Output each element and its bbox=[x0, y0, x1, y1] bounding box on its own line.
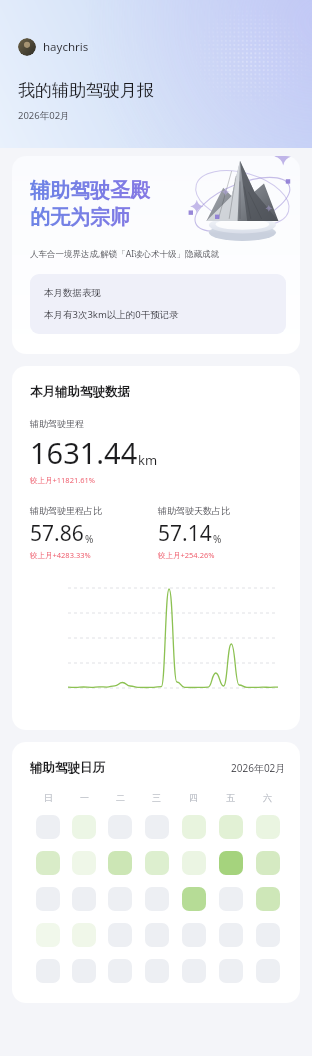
button[interactable]: 日期 bbox=[36, 923, 60, 947]
staticText: 六 bbox=[263, 792, 272, 803]
staticText: 本月辅助驾驶数据 bbox=[30, 384, 130, 400]
button[interactable]: 日期 bbox=[108, 851, 132, 875]
staticText: km bbox=[138, 451, 158, 469]
button[interactable]: 日期 bbox=[108, 923, 132, 947]
button[interactable]: 成就徽章 bbox=[12, 156, 300, 354]
button[interactable]: 日期 bbox=[145, 923, 169, 947]
button[interactable]: 日期 bbox=[256, 959, 280, 983]
staticText: 五 bbox=[226, 792, 235, 803]
staticText: haychris bbox=[43, 39, 89, 55]
button[interactable]: 日期 bbox=[72, 923, 96, 947]
staticText: 三 bbox=[152, 792, 161, 803]
button[interactable]: 日期 bbox=[219, 959, 243, 983]
button[interactable]: 日期 bbox=[182, 959, 206, 983]
button[interactable]: 日期 bbox=[108, 959, 132, 983]
staticText: 辅助驾驶里程占比 bbox=[30, 505, 102, 516]
button[interactable]: haychris bbox=[18, 38, 89, 56]
staticText: 辅助驾驶里程 bbox=[30, 418, 84, 429]
button[interactable]: 日期 bbox=[256, 923, 280, 947]
staticText: 辅助驾驶日历 bbox=[30, 760, 105, 776]
button[interactable]: 日期 bbox=[182, 887, 206, 911]
button[interactable]: 日期 bbox=[145, 959, 169, 983]
staticText: % bbox=[85, 532, 94, 546]
button[interactable]: 日期 bbox=[36, 815, 60, 839]
staticText: 我的辅助驾驶月报 bbox=[18, 80, 154, 101]
button[interactable]: 本月辅助驾驶数据 bbox=[12, 366, 300, 730]
other: 成就徽章 bbox=[180, 156, 300, 248]
staticText: 较上月+254.26% bbox=[158, 550, 215, 560]
button[interactable]: 日期 bbox=[108, 815, 132, 839]
button[interactable]: 日期 bbox=[145, 815, 169, 839]
staticText: 57.14 bbox=[158, 519, 212, 548]
staticText: 辅助驾驶圣殿 bbox=[30, 178, 150, 203]
button[interactable]: 日期 bbox=[219, 887, 243, 911]
button[interactable]: 日期 bbox=[36, 851, 60, 875]
button[interactable]: 日期 bbox=[145, 887, 169, 911]
staticText: 四 bbox=[189, 792, 198, 803]
button[interactable]: 日期 bbox=[72, 851, 96, 875]
button[interactable]: 日期 bbox=[256, 815, 280, 839]
button[interactable]: 日期 bbox=[145, 851, 169, 875]
staticText: 的无为宗师 bbox=[30, 205, 130, 230]
button[interactable]: 日期 bbox=[36, 887, 60, 911]
staticText: 本月数据表现 bbox=[44, 287, 101, 299]
button[interactable]: 日期 bbox=[256, 851, 280, 875]
staticText: 2026年02月 bbox=[18, 109, 70, 122]
button[interactable]: 日期 bbox=[72, 815, 96, 839]
staticText: 一 bbox=[80, 792, 89, 803]
button[interactable]: 日期 bbox=[219, 851, 243, 875]
button[interactable]: 日期 bbox=[72, 959, 96, 983]
button[interactable]: 日期 bbox=[256, 887, 280, 911]
button[interactable]: 日期 bbox=[108, 887, 132, 911]
staticText: % bbox=[213, 532, 222, 546]
button[interactable]: 日期 bbox=[182, 923, 206, 947]
staticText: 本月有3次3km以上的0干预记录 bbox=[44, 308, 179, 321]
button[interactable]: 日期 bbox=[182, 815, 206, 839]
staticText: 辅助驾驶天数占比 bbox=[158, 505, 230, 516]
staticText: 2026年02月 bbox=[231, 761, 286, 775]
button[interactable]: 日期 bbox=[219, 815, 243, 839]
button[interactable]: 日期 bbox=[182, 851, 206, 875]
staticText: 较上月+4283.33% bbox=[30, 550, 91, 560]
staticText: 较上月+11821.61% bbox=[30, 475, 96, 485]
staticText: 二 bbox=[116, 792, 125, 803]
button[interactable]: 辅助驾驶日历 bbox=[12, 742, 300, 1003]
staticText: 日 bbox=[44, 792, 53, 803]
button[interactable]: 日期 bbox=[36, 959, 60, 983]
staticText: 人车合一境界达成,解锁「AI读心术十级」隐藏成就 bbox=[30, 248, 220, 260]
staticText: 1631.44 bbox=[30, 433, 138, 472]
button[interactable]: 日期 bbox=[219, 923, 243, 947]
button[interactable]: 日期 bbox=[72, 887, 96, 911]
staticText: 57.86 bbox=[30, 519, 84, 548]
